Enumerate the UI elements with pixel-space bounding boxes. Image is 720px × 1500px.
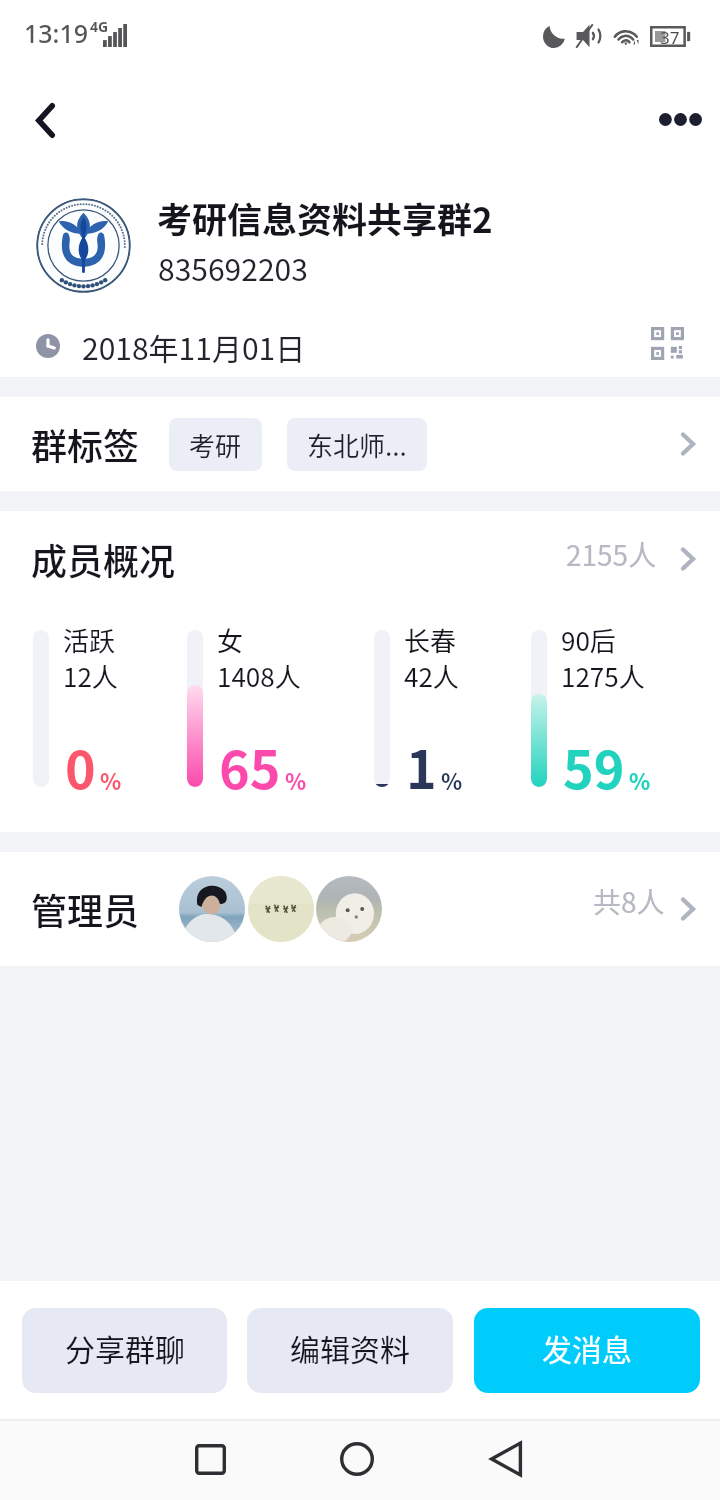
- button[interactable]: QR code: [639, 315, 695, 371]
- staticText: 4G: [90, 17, 109, 36]
- staticText: %: [100, 764, 122, 796]
- staticText: 13:19: [24, 16, 89, 50]
- button[interactable]: Back: [462, 1424, 550, 1494]
- staticText: 共8人: [593, 881, 665, 922]
- button[interactable]: 分享群聊: [22, 1308, 227, 1393]
- button[interactable]: 群标签: [0, 397, 720, 491]
- staticText: 90后 1275人: [561, 621, 645, 694]
- staticText: 长春 42人: [404, 621, 459, 694]
- staticText: 发消息: [542, 1326, 632, 1369]
- staticText: 1: [406, 729, 437, 804]
- button[interactable]: More options: [644, 83, 716, 155]
- staticText: 2155人: [566, 534, 657, 575]
- staticText: 女 1408人: [217, 621, 301, 694]
- staticText: 835692203: [158, 246, 308, 289]
- staticText: 东北师...: [307, 426, 407, 464]
- button[interactable]: 编辑资料: [247, 1308, 453, 1393]
- button[interactable]: Recent apps: [166, 1424, 254, 1494]
- staticText: 成员概况: [31, 533, 176, 585]
- staticText: %: [285, 764, 307, 796]
- staticText: 编辑资料: [290, 1326, 410, 1369]
- staticText: 管理员: [31, 883, 140, 935]
- staticText: 0: [65, 729, 96, 804]
- staticText: 2018年11月01日: [82, 325, 306, 368]
- staticText: 考研: [189, 426, 242, 464]
- staticText: 59: [563, 729, 625, 804]
- staticText: 分享群聊: [65, 1326, 185, 1369]
- staticText: 活跃 12人: [63, 621, 118, 694]
- staticText: 群标签: [31, 418, 140, 470]
- button[interactable]: 发消息: [474, 1308, 700, 1393]
- staticText: %: [441, 764, 463, 796]
- staticText: 37: [660, 26, 680, 47]
- button[interactable]: Back: [9, 84, 81, 156]
- staticText: 65: [219, 729, 281, 804]
- button[interactable]: 成员概况: [0, 511, 720, 607]
- button[interactable]: Home: [313, 1424, 401, 1494]
- staticText: 考研信息资料共享群2: [157, 192, 493, 243]
- staticText: %: [629, 764, 651, 796]
- button[interactable]: 管理员: [0, 852, 720, 966]
- button[interactable]: 2018年11月01日: [0, 308, 720, 384]
